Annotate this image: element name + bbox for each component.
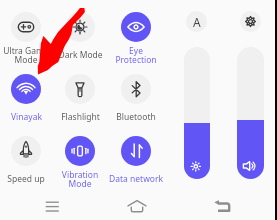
staticText: Vibration Mode (53, 169, 107, 190)
button[interactable]: Vibration Mode (53, 136, 107, 192)
staticText: Data network (109, 173, 163, 185)
button[interactable]: Eye Protection (109, 12, 163, 68)
button[interactable]: Font size (186, 11, 207, 32)
button[interactable]: Settings (240, 11, 261, 32)
button[interactable]: Volume (237, 47, 264, 179)
button[interactable]: Back (206, 192, 238, 220)
button[interactable]: Brightness (184, 47, 210, 179)
button[interactable]: Home (121, 192, 153, 220)
staticText: Flashlight (61, 111, 100, 123)
staticText: Ultra Game Mode (0, 45, 53, 66)
staticText: Eye Protection (109, 45, 163, 66)
button[interactable]: Data network (109, 136, 163, 192)
button[interactable]: Flashlight (53, 74, 107, 130)
staticText: A (193, 14, 201, 30)
staticText: Vinayak (11, 111, 42, 123)
button[interactable]: Ultra Game Mode (0, 12, 53, 68)
button[interactable]: Speed up (0, 136, 53, 192)
button[interactable]: Recent apps (36, 192, 68, 220)
staticText: Dark Mode (58, 49, 103, 61)
staticText: Bluetooth (116, 111, 156, 123)
button[interactable]: Dark Mode (53, 12, 107, 68)
staticText: Speed up (7, 173, 45, 185)
button[interactable]: Bluetooth (109, 74, 163, 130)
button[interactable]: Vinayak (0, 74, 53, 130)
